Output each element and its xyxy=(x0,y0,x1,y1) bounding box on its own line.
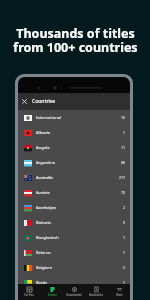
staticText: 2 xyxy=(123,205,126,210)
staticText: 1 xyxy=(123,235,126,240)
staticText: Bangladesh xyxy=(36,235,59,241)
staticText: 2 xyxy=(123,265,126,270)
button[interactable]: Belarus xyxy=(18,245,130,260)
staticText: Austria xyxy=(36,190,50,196)
button[interactable]: Bangladesh xyxy=(18,230,130,245)
button[interactable]: Bookmarks xyxy=(85,287,107,297)
staticText: 11 xyxy=(121,145,126,150)
button[interactable]: Benin xyxy=(18,275,130,290)
button[interactable]: Downloaded xyxy=(63,287,85,297)
staticText: Bahrain xyxy=(36,220,51,226)
button[interactable]: Austria xyxy=(18,185,130,200)
button[interactable]: Close xyxy=(21,98,28,105)
staticText: Azerbaijan xyxy=(36,205,57,211)
staticText: For You xyxy=(24,293,34,297)
staticText: Argentina xyxy=(36,160,55,166)
staticText: Bookmarks xyxy=(89,293,103,297)
staticText: 1 xyxy=(123,280,126,285)
staticText: 7 xyxy=(123,250,126,255)
staticText: Belgium xyxy=(36,265,52,271)
staticText: 88 xyxy=(121,160,126,165)
staticText: Browse xyxy=(48,293,57,297)
button[interactable]: Albania xyxy=(18,125,130,140)
button[interactable]: International xyxy=(18,110,130,125)
button[interactable]: Browse xyxy=(41,287,63,297)
staticText: 70 xyxy=(121,190,126,195)
staticText: 9 xyxy=(123,220,126,225)
staticText: Angola xyxy=(36,145,50,151)
button[interactable]: For You xyxy=(18,287,40,297)
staticText: Downloaded xyxy=(66,293,82,297)
staticText: 1 xyxy=(123,130,126,135)
button[interactable]: More xyxy=(108,287,130,297)
staticText: 217 xyxy=(119,175,126,180)
button[interactable]: Angola xyxy=(18,140,130,155)
staticText: Belarus xyxy=(36,250,51,256)
button[interactable]: Belgium xyxy=(18,260,130,275)
staticText: International xyxy=(36,115,62,121)
button[interactable]: Argentina xyxy=(18,155,130,170)
staticText: Benin xyxy=(36,280,48,286)
button[interactable]: Bahrain xyxy=(18,215,130,230)
staticText: Albania xyxy=(36,130,51,136)
staticText: More xyxy=(116,293,123,297)
staticText: 10 xyxy=(121,115,126,120)
staticText: Australia xyxy=(36,175,53,181)
staticText: Countries xyxy=(32,98,56,105)
button[interactable]: Azerbaijan xyxy=(18,200,130,215)
button[interactable]: Australia xyxy=(18,170,130,185)
staticText: Thousands of titles from 100+ countries xyxy=(13,25,138,55)
